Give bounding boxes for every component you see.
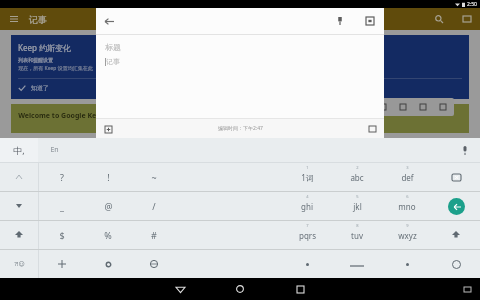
- staticText: !: [107, 171, 110, 183]
- staticText: wxyz: [398, 230, 417, 241]
- staticText: 知道了: [31, 84, 49, 92]
- staticText: 编辑时间：下午2:47: [218, 125, 263, 132]
- button[interactable]: !: [85, 163, 131, 191]
- button[interactable]: [131, 250, 177, 278]
- staticText: 标题: [105, 42, 121, 52]
- staticText: jkl: [353, 201, 362, 212]
- staticText: 现在，所有 Keep 设置均汇集在此: [18, 65, 93, 72]
- button[interactable]: Emoji: [432, 250, 480, 278]
- staticText: ?: [60, 171, 64, 183]
- button[interactable]: Nav 2: [0, 221, 38, 249]
- staticText: Keep 约斯变化: [18, 42, 71, 53]
- staticText: /: [152, 200, 156, 212]
- staticText: 记事: [106, 57, 120, 66]
- button[interactable]: $: [39, 221, 85, 249]
- button[interactable]: Shift: [432, 221, 480, 249]
- button[interactable]: Archive: [362, 13, 378, 29]
- staticText: 6: [406, 194, 409, 199]
- staticText: def: [401, 172, 414, 183]
- button[interactable]: ~: [131, 163, 177, 191]
- button[interactable]: /: [131, 192, 177, 220]
- button[interactable]: 2: [332, 163, 382, 191]
- button[interactable]: View options: [460, 12, 474, 26]
- button[interactable]: 7: [282, 221, 332, 249]
- staticText: ?!☺: [14, 260, 25, 268]
- button[interactable]: Photo: [438, 102, 448, 112]
- button[interactable]: Search: [432, 12, 446, 26]
- staticText: 中,: [13, 144, 25, 156]
- button[interactable]: Switch keyboard: [463, 285, 472, 294]
- button[interactable]: #: [131, 221, 177, 249]
- button[interactable]: [39, 250, 85, 278]
- staticText: @: [104, 200, 113, 212]
- button[interactable]: Nav 0: [0, 163, 38, 191]
- button[interactable]: [85, 250, 131, 278]
- staticText: 9: [406, 223, 409, 228]
- staticText: 1: [306, 165, 309, 170]
- staticText: $: [59, 229, 65, 241]
- staticText: 列表和提醒设置: [18, 57, 53, 63]
- staticText: tuv: [351, 230, 363, 241]
- staticText: ~: [151, 171, 157, 183]
- staticText: 1词: [301, 172, 314, 183]
- button[interactable]: Space: [332, 250, 382, 278]
- staticText: _: [60, 200, 64, 212]
- staticText: 记事: [29, 14, 47, 25]
- staticText: 4: [306, 194, 309, 199]
- button[interactable]: [382, 250, 432, 278]
- staticText: 7: [306, 223, 309, 228]
- button[interactable]: Menu: [7, 12, 21, 26]
- staticText: #: [151, 229, 157, 241]
- button[interactable]: Pin: [332, 13, 348, 29]
- button[interactable]: Draw: [398, 102, 408, 112]
- staticText: 8: [356, 223, 359, 228]
- staticText: Google Keep lets you quickly capture: [18, 125, 122, 126]
- button[interactable]: 知道了: [18, 84, 49, 92]
- button[interactable]: Nav 1: [0, 192, 38, 220]
- staticText: %: [104, 229, 112, 241]
- button[interactable]: ?: [39, 163, 85, 191]
- staticText: Welcome to Google Keep: [18, 111, 105, 121]
- staticText: 2: [356, 165, 359, 170]
- staticText: 2:50: [467, 1, 477, 8]
- button[interactable]: Recents: [291, 280, 309, 298]
- button[interactable]: 3: [382, 163, 432, 191]
- button[interactable]: More options: [365, 122, 379, 136]
- button[interactable]: @: [85, 192, 131, 220]
- staticText: En: [50, 145, 59, 155]
- button[interactable]: 5: [332, 192, 382, 220]
- button[interactable]: Voice: [418, 102, 428, 112]
- staticText: mno: [398, 201, 416, 212]
- button[interactable]: 中,: [0, 138, 38, 162]
- button[interactable]: %: [85, 221, 131, 249]
- button[interactable]: 1: [282, 163, 332, 191]
- button[interactable]: [282, 250, 332, 278]
- button[interactable]: Add: [101, 122, 115, 136]
- staticText: 5: [356, 194, 359, 199]
- staticText: 3: [406, 165, 409, 170]
- staticText: ghi: [301, 201, 313, 212]
- button[interactable]: 6: [382, 192, 432, 220]
- button[interactable]: _: [39, 192, 85, 220]
- button[interactable]: Back: [101, 13, 117, 29]
- button[interactable]: Home: [231, 280, 249, 298]
- staticText: abc: [350, 172, 364, 183]
- button[interactable]: Voice input: [458, 143, 472, 157]
- button[interactable]: Nav 3: [0, 250, 38, 278]
- button[interactable]: 8: [332, 221, 382, 249]
- button[interactable]: 9: [382, 221, 432, 249]
- button[interactable]: Back: [171, 280, 189, 298]
- button[interactable]: Enter: [432, 192, 480, 220]
- button[interactable]: List: [378, 102, 388, 112]
- button[interactable]: Backspace: [432, 163, 480, 191]
- staticText: pqrs: [299, 230, 316, 241]
- button[interactable]: 4: [282, 192, 332, 220]
